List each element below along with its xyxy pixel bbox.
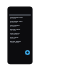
staticText: Call Mom (10, 32, 20, 35)
staticText: Morning run (10, 16, 23, 19)
staticText: Book flight (10, 40, 21, 43)
staticText: 12 min (10, 29, 17, 32)
staticText: Standup call (10, 20, 23, 23)
button[interactable]: Add (25, 50, 30, 55)
button[interactable]: Groceries (7, 24, 33, 28)
staticText: Next week (10, 41, 20, 44)
button[interactable]: Read later (7, 28, 33, 32)
button[interactable]: Standup call (7, 20, 33, 24)
staticText: 5.2 km (10, 17, 16, 20)
button[interactable]: Pay rent (7, 36, 33, 40)
staticText: Yesterday (10, 33, 19, 36)
staticText: 9:30 AM (10, 21, 18, 24)
button[interactable]: Book flight (7, 40, 33, 44)
staticText: Groceries (10, 24, 20, 27)
staticText: Friday (10, 37, 16, 40)
staticText: Pay rent (10, 36, 19, 39)
button[interactable]: Search (9, 14, 31, 16)
staticText: Read later (10, 28, 21, 31)
button[interactable]: Morning run (7, 16, 33, 20)
button[interactable]: Call Mom (7, 32, 33, 36)
staticText: 6 items (10, 25, 17, 28)
